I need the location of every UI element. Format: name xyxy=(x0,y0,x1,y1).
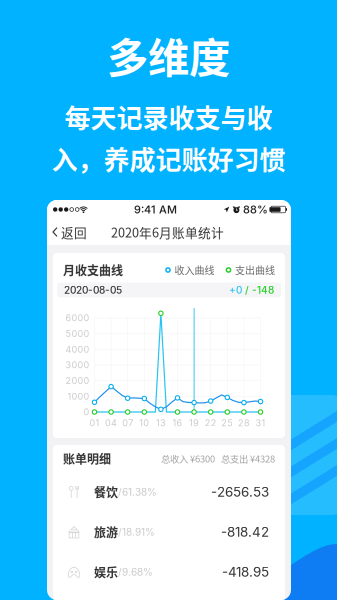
staticText: 1000 xyxy=(67,391,89,402)
staticText: 88% xyxy=(243,203,268,216)
staticText: 13 xyxy=(156,417,166,428)
staticText: 收入曲线 xyxy=(174,263,214,277)
staticText: 2020年6月账单统计 xyxy=(111,223,224,241)
button[interactable]: 餐饮 xyxy=(53,472,285,512)
staticText: 2000 xyxy=(65,375,89,386)
staticText: 3000 xyxy=(65,359,89,370)
staticText: 娱乐 xyxy=(94,563,118,581)
staticText: 28 xyxy=(238,417,250,428)
staticText: 6000 xyxy=(65,312,89,323)
staticText: 22 xyxy=(205,417,217,428)
staticText: 25 xyxy=(221,417,233,428)
staticText: 0 xyxy=(83,406,89,417)
staticText: -418.95 xyxy=(222,564,269,580)
staticText: 31 xyxy=(255,417,265,428)
staticText: 多维度 xyxy=(107,25,230,85)
staticText: 入，养成记账好习惯 xyxy=(51,139,285,177)
staticText: / -148 xyxy=(245,284,274,296)
staticText: 支出曲线 xyxy=(235,263,275,277)
button[interactable]: 返回 xyxy=(47,219,93,245)
staticText: /61.38% xyxy=(118,486,157,498)
staticText: 16 xyxy=(172,417,182,428)
staticText: 4000 xyxy=(65,344,89,355)
staticText: 9:41 AM xyxy=(134,203,177,216)
staticText: 返回 xyxy=(61,223,87,241)
staticText: 账单明细 xyxy=(63,450,111,467)
staticText: 07 xyxy=(122,417,133,428)
staticText: -2656.53 xyxy=(211,484,269,500)
staticText: 旅游 xyxy=(94,523,118,541)
staticText: 10 xyxy=(139,417,149,428)
staticText: +0 xyxy=(229,284,245,296)
staticText: 5000 xyxy=(65,328,89,339)
staticText: /9.68% xyxy=(118,566,153,578)
staticText: /18.91% xyxy=(118,526,155,538)
button[interactable]: 娱乐 xyxy=(53,552,285,592)
staticText: 每天记录收支与收 xyxy=(64,98,272,135)
staticText: 19 xyxy=(189,417,199,428)
staticText: 01 xyxy=(89,417,99,428)
staticText: 2020-08-05 xyxy=(64,284,122,296)
staticText: 月收支曲线 xyxy=(63,261,123,279)
staticText: 餐饮 xyxy=(94,483,118,501)
staticText: -818.42 xyxy=(221,524,269,540)
staticText: 04 xyxy=(105,417,117,428)
button[interactable]: 旅游 xyxy=(53,512,285,552)
staticText: 总收入 ¥6300 总支出 ¥4328 xyxy=(161,452,275,465)
